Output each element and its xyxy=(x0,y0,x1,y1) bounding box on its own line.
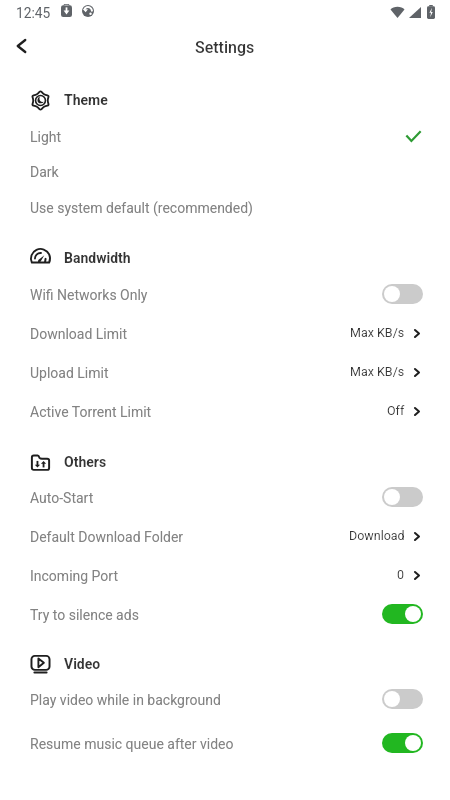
staticText: Play video while in background xyxy=(30,692,221,708)
staticText: Download Limit xyxy=(30,326,128,342)
button[interactable]: Back xyxy=(2,28,40,66)
button[interactable]: Light xyxy=(0,117,450,157)
staticText: Default Download Folder xyxy=(30,529,184,545)
staticText: Dark xyxy=(30,164,59,180)
staticText: Video xyxy=(64,656,101,672)
staticText: Off xyxy=(387,403,405,418)
staticText: Settings xyxy=(195,38,255,57)
button[interactable]: Download Limit xyxy=(0,314,450,354)
button[interactable]: Auto-Start xyxy=(0,478,450,518)
staticText: Max KB/s xyxy=(350,325,405,340)
staticText: Bandwidth xyxy=(64,250,131,266)
staticText: Incoming Port xyxy=(30,568,118,584)
button[interactable]: Use system default (recommended) xyxy=(0,188,450,228)
button[interactable]: Default Download Folder xyxy=(0,517,450,557)
staticText: Active Torrent Limit xyxy=(30,404,152,420)
staticText: Light xyxy=(30,129,62,145)
staticText: Upload Limit xyxy=(30,365,109,381)
button[interactable]: Resume music queue after video xyxy=(0,724,450,764)
staticText: Theme xyxy=(64,92,108,108)
button[interactable]: Active Torrent Limit xyxy=(0,392,450,432)
staticText: Max KB/s xyxy=(350,364,405,379)
staticText: Wifi Networks Only xyxy=(30,287,148,303)
staticText: 0 xyxy=(397,567,405,582)
staticText: Use system default (recommended) xyxy=(30,200,253,216)
button[interactable]: Dark xyxy=(0,152,450,192)
button[interactable]: Play video while in background xyxy=(0,680,450,720)
staticText: Resume music queue after video xyxy=(30,736,234,752)
button[interactable]: Upload Limit xyxy=(0,353,450,393)
button[interactable]: Wifi Networks Only xyxy=(0,275,450,315)
button[interactable]: Try to silence ads xyxy=(0,595,450,635)
staticText: Download xyxy=(349,528,405,543)
staticText: Auto-Start xyxy=(30,490,94,506)
staticText: Others xyxy=(64,454,107,470)
staticText: Try to silence ads xyxy=(30,607,139,623)
button[interactable]: Incoming Port xyxy=(0,556,450,596)
staticText: 12:45 xyxy=(16,5,51,21)
